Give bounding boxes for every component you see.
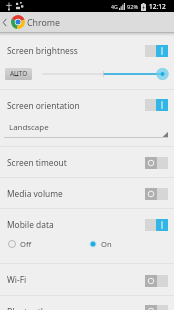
staticText: 12:12 [149, 2, 166, 11]
button[interactable]: Brightness slider [36, 65, 174, 83]
button[interactable]: Off [7, 239, 32, 249]
staticText: Screen orientation [7, 100, 80, 111]
button[interactable]: Switch on [145, 219, 168, 231]
button[interactable]: Switch off [145, 188, 168, 200]
button[interactable]: Landscape [4, 114, 168, 138]
button[interactable]: Switch off [145, 275, 168, 287]
button[interactable]: On [88, 239, 112, 249]
button[interactable]: Switch off [145, 157, 168, 169]
staticText: Chrome [27, 17, 60, 29]
button[interactable]: Switch on [145, 99, 168, 111]
staticText: Landscape [9, 122, 49, 133]
button[interactable]: Media volume [0, 178, 174, 208]
staticText: 92% [127, 3, 139, 11]
button[interactable]: Bluetooth [0, 296, 174, 310]
staticText: On [101, 239, 112, 249]
staticText: Mobile data [7, 219, 54, 230]
staticText: Media volume [7, 188, 63, 199]
staticText: AUTO [10, 69, 28, 78]
button[interactable]: Screen timeout [0, 147, 174, 177]
button[interactable]: Wi-Fi [0, 264, 174, 295]
staticText: Screen timeout [7, 157, 67, 168]
staticText: Bluetooth [7, 306, 46, 310]
staticText: 4G [111, 3, 118, 10]
button[interactable]: Switch off [145, 305, 168, 310]
staticText: Off [20, 239, 32, 249]
button[interactable]: Switch on [145, 45, 168, 57]
button[interactable]: Back [0, 12, 11, 33]
staticText: Wi-Fi [7, 274, 27, 285]
staticText: Screen brightness [7, 45, 78, 56]
button[interactable]: AUTO [5, 68, 32, 80]
